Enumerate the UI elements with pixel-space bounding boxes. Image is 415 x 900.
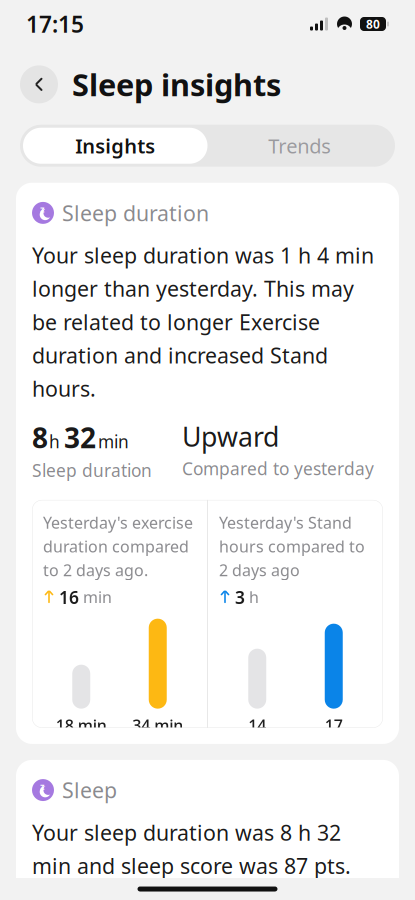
- staticText: Sleep duration: [62, 199, 209, 227]
- staticText: Trends: [268, 132, 331, 159]
- staticText: h: [49, 430, 60, 453]
- staticText: Insights: [75, 132, 155, 159]
- staticText: 8: [32, 419, 48, 456]
- staticText: 17:15: [26, 9, 84, 39]
- staticText: 17: [325, 715, 343, 736]
- staticText: 2 days ago: [57, 740, 105, 782]
- staticText: 34 min: [132, 715, 183, 736]
- staticText: min: [83, 586, 112, 608]
- staticText: Yesterday: [297, 750, 370, 772]
- staticText: 3: [235, 586, 245, 609]
- staticText: 18 min: [56, 715, 107, 736]
- staticText: Upward: [182, 419, 279, 454]
- staticText: Sleep insights: [72, 64, 281, 105]
- staticText: Sleep duration: [32, 459, 152, 482]
- staticText: Your sleep duration was 1 h 4 min longer…: [32, 241, 374, 403]
- button[interactable]: Back: [20, 65, 58, 103]
- staticText: Yesterday's exercise duration compared t…: [43, 512, 193, 581]
- button[interactable]: Trends: [207, 128, 392, 164]
- staticText: Yesterday's Stand hours compared to 2 da…: [219, 512, 365, 581]
- staticText: 16: [59, 586, 79, 609]
- staticText: Your sleep duration was 8 h 32 min and s…: [32, 818, 351, 880]
- staticText: 80: [366, 16, 380, 32]
- staticText: Compared to yesterday: [182, 457, 374, 480]
- staticText: 2 days ago: [233, 740, 281, 782]
- staticText: Yesterday: [121, 750, 194, 772]
- staticText: h: [249, 586, 259, 608]
- staticText: 32: [64, 419, 96, 456]
- staticText: Sleep: [62, 776, 117, 804]
- staticText: z: [40, 780, 45, 792]
- staticText: min: [98, 430, 129, 453]
- button[interactable]: Insights: [23, 128, 207, 164]
- staticText: 14: [248, 715, 266, 736]
- staticText: z: [40, 203, 45, 215]
